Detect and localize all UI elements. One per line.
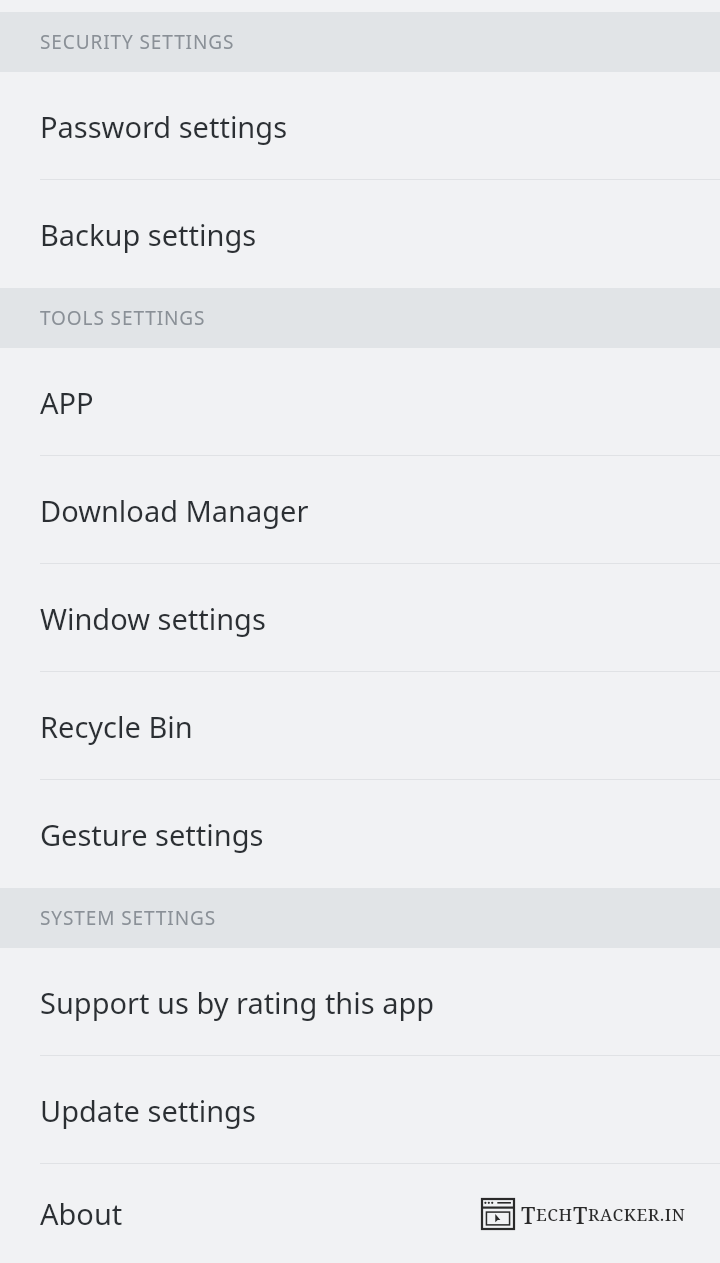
button[interactable]: Download Manager <box>0 456 720 564</box>
staticText: Download Manager <box>40 491 720 530</box>
staticText: SECURITY SETTINGS <box>40 29 235 55</box>
staticText: Window settings <box>40 599 720 638</box>
button[interactable]: Support us by rating this app <box>0 948 720 1056</box>
staticText: Password settings <box>40 107 720 146</box>
staticText: Backup settings <box>40 215 720 254</box>
staticText: About <box>40 1194 481 1233</box>
staticText: RACKER.IN <box>588 1203 686 1226</box>
button[interactable]: Backup settings <box>0 180 720 288</box>
staticText: APP <box>40 383 720 422</box>
staticText: ECH <box>536 1203 573 1226</box>
staticText: T <box>573 1199 588 1230</box>
staticText: Support us by rating this app <box>40 983 720 1022</box>
button[interactable]: Update settings <box>0 1056 720 1164</box>
staticText: Update settings <box>40 1091 720 1130</box>
staticText: TOOLS SETTINGS <box>40 305 206 331</box>
button[interactable]: About <box>0 1164 720 1263</box>
staticText: Recycle Bin <box>40 707 720 746</box>
staticText: SYSTEM SETTINGS <box>40 905 217 931</box>
button[interactable]: APP <box>0 348 720 456</box>
button[interactable]: Password settings <box>0 72 720 180</box>
staticText: T <box>521 1199 536 1230</box>
staticText: Gesture settings <box>40 815 720 854</box>
button[interactable]: Window settings <box>0 564 720 672</box>
button[interactable]: Gesture settings <box>0 780 720 888</box>
button[interactable]: Recycle Bin <box>0 672 720 780</box>
